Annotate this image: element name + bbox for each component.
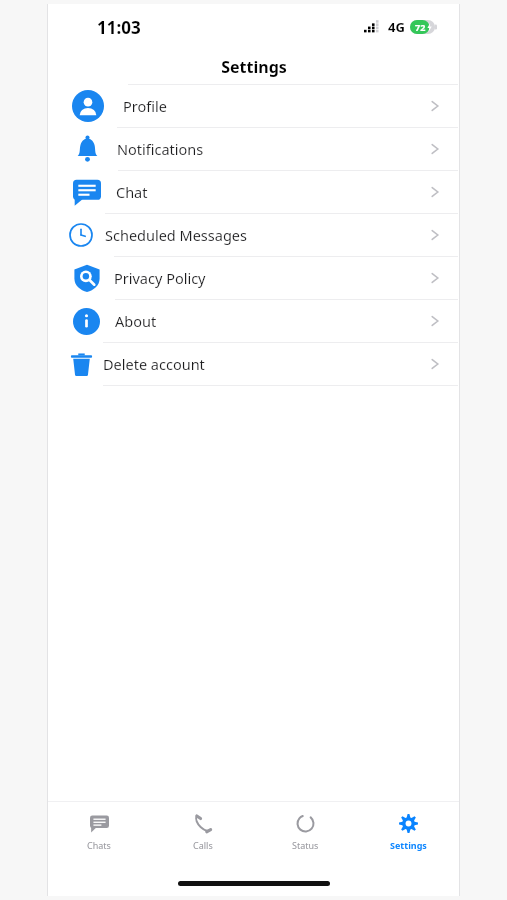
- button[interactable]: Notifications: [47, 128, 460, 170]
- staticText: Settings: [221, 56, 287, 78]
- button[interactable]: Calls: [151, 802, 254, 862]
- staticText: Notifications: [117, 139, 204, 159]
- staticText: Status: [292, 839, 319, 851]
- staticText: Scheduled Messages: [105, 225, 247, 245]
- button[interactable]: Privacy Policy: [47, 257, 460, 299]
- button[interactable]: Settings: [357, 802, 460, 862]
- staticText: Chats: [87, 839, 111, 851]
- staticText: Chat: [116, 182, 148, 202]
- staticText: 72: [415, 21, 426, 33]
- staticText: About: [115, 311, 157, 331]
- button[interactable]: Scheduled Messages: [47, 214, 460, 256]
- staticText: 11:03: [97, 16, 141, 39]
- staticText: Privacy Policy: [114, 268, 206, 288]
- staticText: Delete account: [103, 354, 205, 374]
- staticText: Settings: [390, 839, 427, 851]
- staticText: Calls: [193, 839, 213, 851]
- button[interactable]: Delete account: [47, 343, 460, 385]
- staticText: 4G: [388, 18, 405, 36]
- button[interactable]: Chat: [47, 171, 460, 213]
- staticText: Profile: [123, 96, 167, 116]
- button[interactable]: About: [47, 300, 460, 342]
- button[interactable]: Status: [254, 802, 357, 862]
- button[interactable]: Chats: [47, 802, 151, 862]
- button[interactable]: Profile: [47, 85, 460, 127]
